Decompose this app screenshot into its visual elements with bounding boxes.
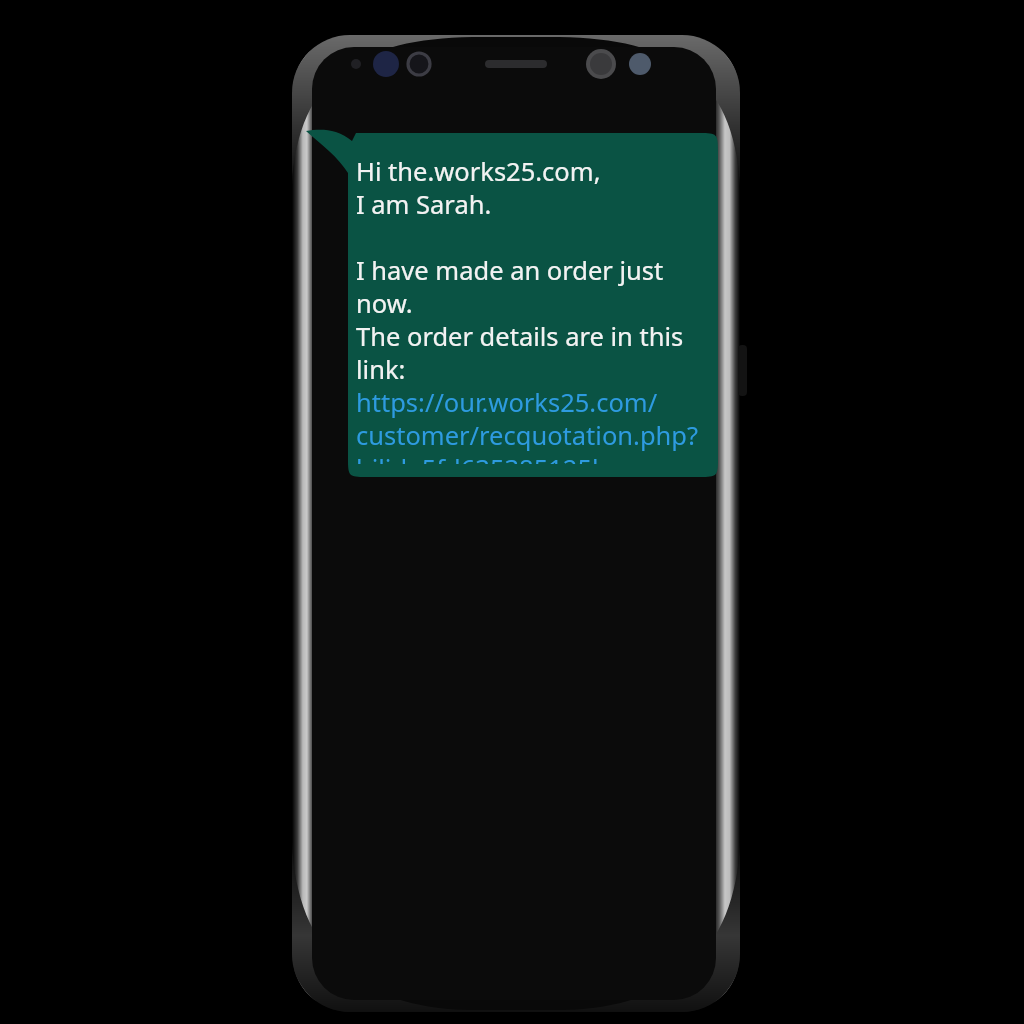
button[interactable]: Open order details link [356,320,696,418]
button[interactable]: Hi the.works25.com, I am Sarah. I have m… [356,154,712,464]
staticText: Hi the.works25.com, I am Sarah. I have m… [356,154,712,464]
